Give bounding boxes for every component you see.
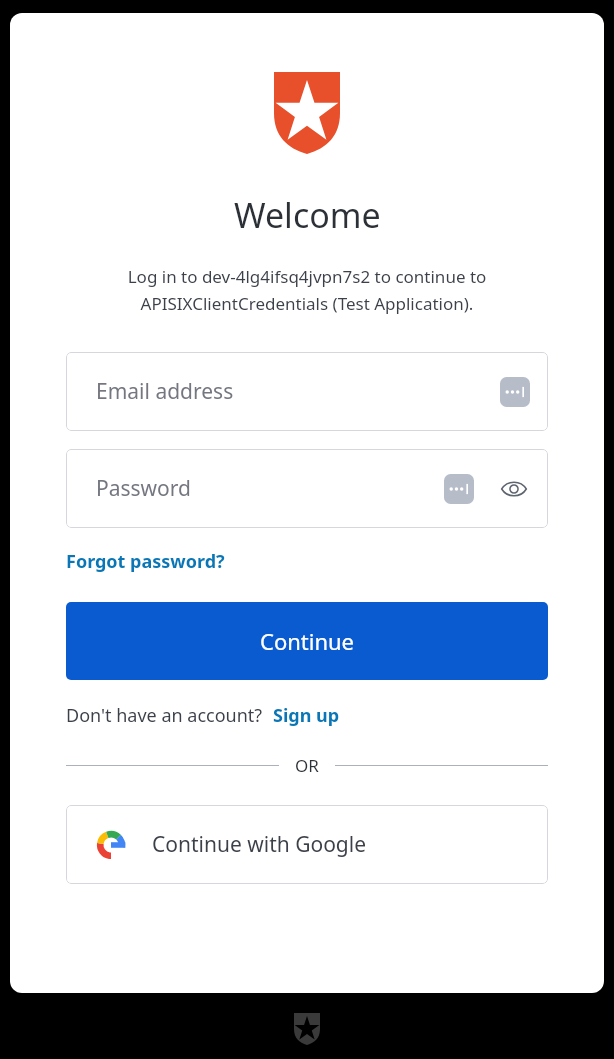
staticText: Continue with Google xyxy=(152,830,367,859)
button[interactable]: Forgot password? xyxy=(66,549,225,574)
other: Autofill email xyxy=(500,377,530,407)
staticText: Continue xyxy=(260,626,355,656)
staticText: Don't have an account? xyxy=(66,703,263,728)
button[interactable]: Continue xyxy=(66,602,548,680)
staticText: OR xyxy=(295,754,319,777)
button[interactable]: Password xyxy=(66,449,548,528)
button[interactable]: Email address xyxy=(66,352,548,431)
staticText: Log in to dev-4lg4ifsq4jvpn7s2 to contin… xyxy=(66,265,548,315)
button[interactable]: Continue with Google xyxy=(66,805,548,884)
button[interactable]: Sign up xyxy=(273,703,340,728)
staticText: Email address xyxy=(96,377,500,406)
other: Auth0 xyxy=(294,1013,320,1045)
staticText: Welcome xyxy=(234,192,381,238)
staticText: Password xyxy=(96,474,444,503)
button[interactable]: Show password xyxy=(498,473,530,505)
other: Autofill password xyxy=(444,474,474,504)
